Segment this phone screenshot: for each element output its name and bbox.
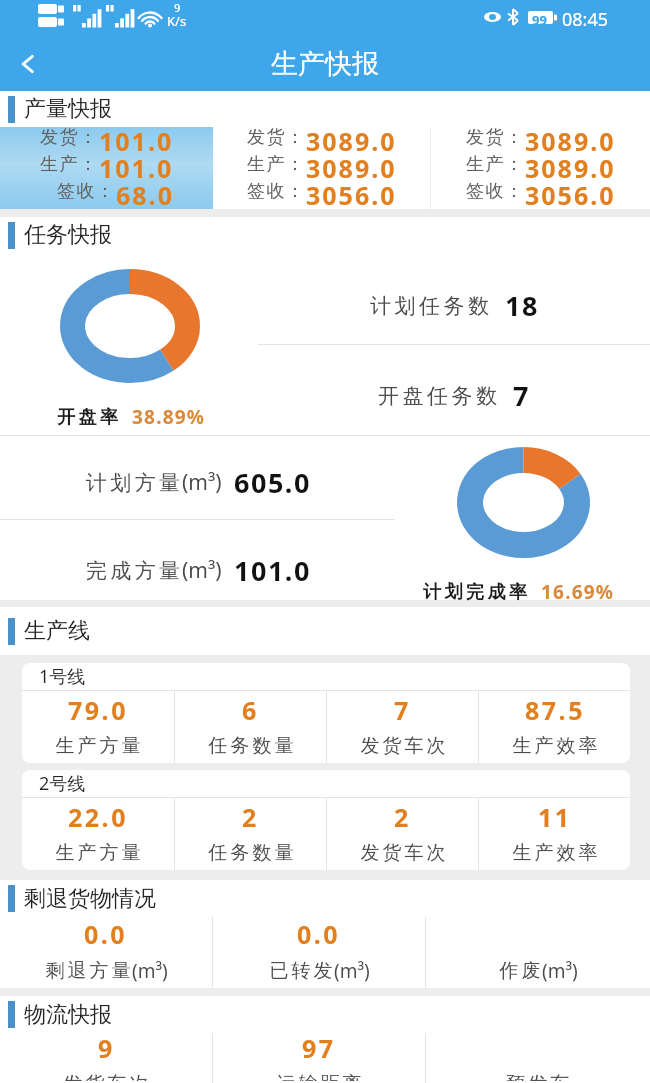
staticText: 生产效率 [511, 734, 599, 758]
staticText: 任务数量 [207, 734, 295, 758]
staticText: 0.0 [297, 917, 341, 951]
staticText: 计划任务数 [370, 293, 493, 319]
staticText: 38.89% [132, 404, 206, 430]
staticText: 9 [174, 0, 181, 15]
staticText: 3056.0 [306, 178, 397, 205]
staticText: 生产效率 [511, 841, 599, 865]
button[interactable]: 2号线 [22, 770, 630, 870]
staticText: 2号线 [39, 771, 86, 796]
staticText: 发货车次 [359, 841, 447, 865]
staticText: 完成方量 [84, 558, 182, 584]
staticText: 产量快报 [24, 95, 112, 123]
staticText: 1号线 [39, 664, 86, 689]
staticText: 运输距离 [275, 1072, 363, 1081]
staticText: 计划方量 [84, 470, 182, 496]
staticText: (m³) [334, 958, 370, 984]
staticText: 79.0 [68, 693, 128, 727]
staticText: 0.0 [84, 917, 128, 951]
staticText: 3089.0 [525, 124, 616, 151]
staticText: 101.0 [234, 552, 311, 589]
staticText: 物流快报 [24, 1001, 112, 1029]
staticText: 预发车 [505, 1072, 571, 1081]
staticText: 7 [513, 377, 530, 414]
staticText: 剩退货物情况 [24, 885, 156, 913]
staticText: 3056.0 [525, 178, 616, 205]
staticText: 101.0 [99, 124, 174, 151]
staticText: 剩退方量 [44, 959, 132, 983]
staticText: 6 [242, 693, 259, 727]
staticText: 签收： [57, 180, 116, 203]
staticText: 生产方量 [54, 734, 142, 758]
staticText: 开盘率 [57, 406, 122, 429]
button[interactable]: 发货： [213, 127, 430, 209]
button[interactable]: 发货： [431, 127, 650, 209]
button[interactable]: 1号线 [22, 663, 630, 763]
staticText: 18 [505, 287, 539, 324]
staticText: 开盘任务数 [378, 383, 501, 409]
staticText: 11 [538, 800, 572, 834]
staticText: 生产方量 [54, 841, 142, 865]
staticText: 签收： [466, 180, 525, 203]
staticText: 605.0 [234, 464, 311, 501]
staticText: 68.0 [116, 178, 174, 205]
staticText: 任务数量 [207, 841, 295, 865]
staticText: 08:45 [562, 7, 609, 32]
button[interactable]: 发货： [0, 127, 213, 209]
button[interactable]: Back [0, 36, 55, 91]
staticText: 生产线 [24, 617, 90, 645]
staticText: 7 [394, 693, 411, 727]
staticText: 87.5 [525, 693, 585, 727]
staticText: 3089.0 [525, 151, 616, 178]
staticText: 计划完成率 [423, 581, 531, 604]
staticText: 97 [302, 1031, 336, 1065]
staticText: (m³) [132, 958, 168, 984]
staticText: 3089.0 [306, 151, 397, 178]
staticText: (m³) [182, 556, 222, 585]
staticText: 生产： [466, 153, 525, 176]
staticText: 3089.0 [306, 124, 397, 151]
staticText: 任务快报 [24, 221, 112, 249]
staticText: 签收： [247, 180, 306, 203]
staticText: 发货车次 [62, 1072, 150, 1081]
staticText: 2 [242, 800, 259, 834]
staticText: 生产： [40, 153, 99, 176]
staticText: 9 [98, 1031, 115, 1065]
staticText: K/s [167, 12, 187, 30]
staticText: 作废 [498, 959, 542, 983]
staticText: 101.0 [99, 151, 174, 178]
staticText: 发货车次 [359, 734, 447, 758]
staticText: 发货： [40, 126, 99, 149]
staticText: 99 [532, 11, 547, 29]
staticText: 发货： [466, 126, 525, 149]
staticText: 16.69% [541, 579, 615, 605]
staticText: 生产： [247, 153, 306, 176]
staticText: 已转发 [268, 959, 334, 983]
staticText: (m³) [182, 468, 222, 497]
staticText: 发货： [247, 126, 306, 149]
staticText: 2 [394, 800, 411, 834]
staticText: 生产快报 [271, 47, 379, 81]
staticText: (m³) [542, 958, 578, 984]
staticText: 22.0 [68, 800, 128, 834]
